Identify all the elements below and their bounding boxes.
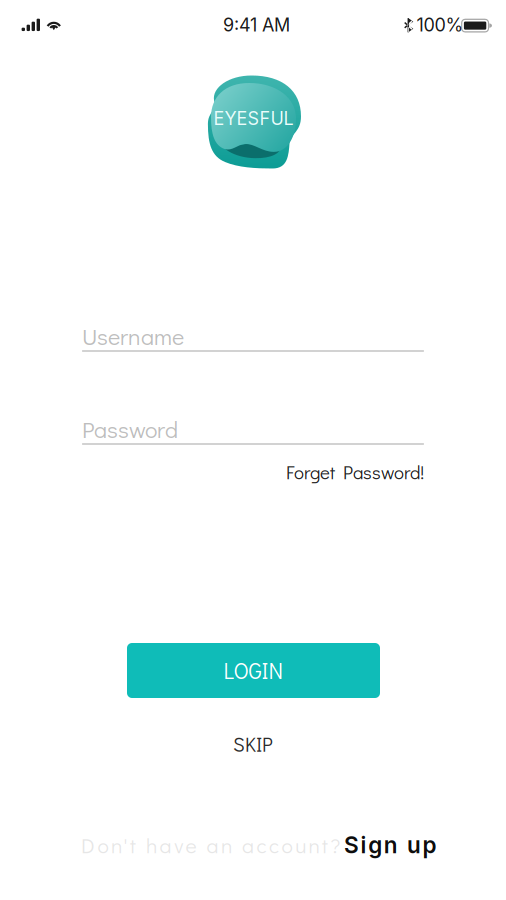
staticText: Password xyxy=(82,414,178,444)
button[interactable]: LOGIN xyxy=(127,643,380,698)
button[interactable]: SKIP xyxy=(193,730,313,758)
staticText: Don't have an account? xyxy=(81,831,340,859)
staticText: LOGIN xyxy=(223,656,283,685)
staticText: Forget Password! xyxy=(286,460,424,484)
staticText: Username xyxy=(82,321,184,351)
staticText: SKIP xyxy=(233,731,273,757)
button[interactable]: Forget Password! xyxy=(82,460,424,484)
staticText: 100% xyxy=(416,14,463,36)
staticText: EYESFUL xyxy=(213,108,293,129)
staticText: Sign up xyxy=(344,831,437,859)
staticText: 9:41 AM xyxy=(223,14,290,36)
button[interactable]: Sign up xyxy=(344,832,454,858)
